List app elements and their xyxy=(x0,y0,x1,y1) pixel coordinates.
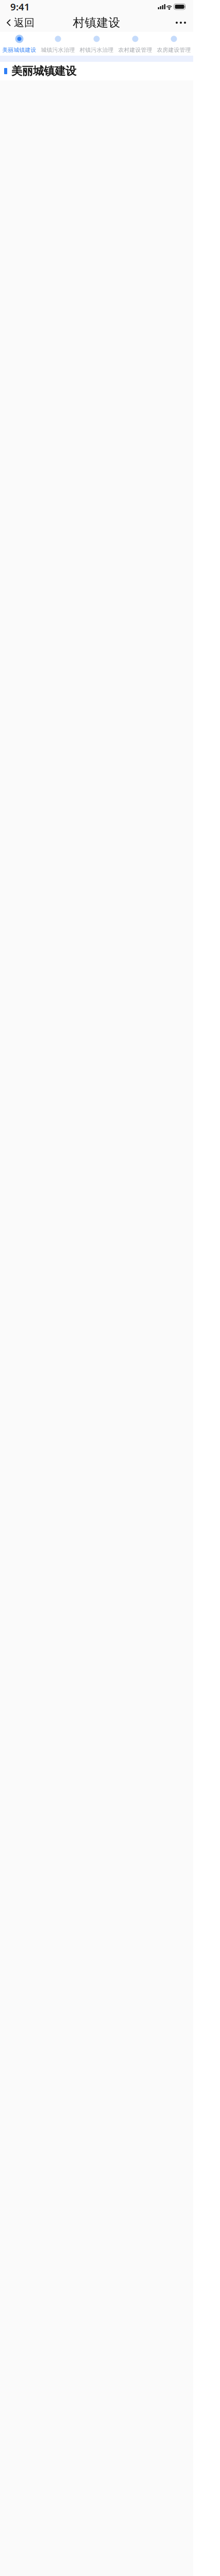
button[interactable]: 更多 xyxy=(168,13,193,32)
staticText: 村镇建设 xyxy=(73,16,120,30)
staticText: 返回 xyxy=(14,16,35,29)
staticText: 城镇污水治理 xyxy=(41,47,75,53)
staticText: 美丽城镇建设 xyxy=(11,64,76,78)
button[interactable]: 农村建设管理 xyxy=(116,32,155,56)
button[interactable]: 城镇污水治理 xyxy=(39,32,77,56)
staticText: 村镇污水治理 xyxy=(80,47,114,53)
staticText: 9:41 xyxy=(10,0,30,13)
button[interactable]: 美丽城镇建设 xyxy=(0,32,39,56)
button[interactable]: 返回 xyxy=(0,13,39,32)
staticText: 农房建设管理 xyxy=(157,47,191,53)
staticText: 美丽城镇建设 xyxy=(2,47,36,53)
staticText: 农村建设管理 xyxy=(118,47,152,53)
button[interactable]: 农房建设管理 xyxy=(155,32,193,56)
button[interactable]: 村镇污水治理 xyxy=(77,32,116,56)
